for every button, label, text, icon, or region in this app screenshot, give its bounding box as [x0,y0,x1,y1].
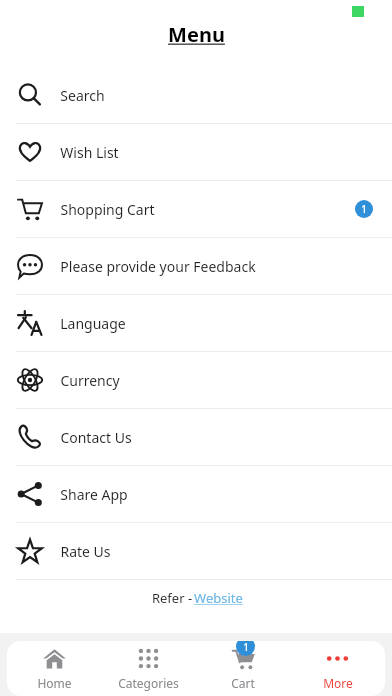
button[interactable]: Search [0,67,392,123]
button[interactable]: Website [194,589,243,607]
button[interactable]: Share App [0,466,392,522]
button[interactable]: Currency [0,352,392,408]
button[interactable]: Language [0,295,392,351]
staticText: Search [60,86,105,105]
button[interactable]: Categories [101,641,195,696]
staticText: Home [37,675,72,691]
staticText: Rate Us [60,542,111,561]
staticText: Wish List [60,143,119,162]
button[interactable]: More [290,641,385,696]
staticText: Contact Us [60,428,132,447]
staticText: More [323,675,353,691]
staticText: Menu [168,21,225,48]
staticText: Website [194,589,243,607]
button[interactable]: Home [7,641,101,696]
staticText: Please provide your Feedback [60,257,256,276]
staticText: 1 [243,641,249,654]
staticText: Language [60,314,126,333]
staticText: Shopping Cart [60,200,155,219]
staticText: Share App [60,485,128,504]
staticText: Currency [60,371,120,390]
button[interactable]: Please provide your Feedback [0,238,392,294]
button[interactable]: Wish List [0,124,392,180]
staticText: Cart [231,675,255,691]
staticText: Categories [118,675,179,691]
button[interactable]: Contact Us [0,409,392,465]
button[interactable]: Cart [195,641,290,696]
staticText: Refer - [150,589,194,607]
button[interactable]: Shopping Cart [0,181,392,237]
button[interactable]: Rate Us [0,523,392,579]
staticText: 1 [361,202,367,216]
